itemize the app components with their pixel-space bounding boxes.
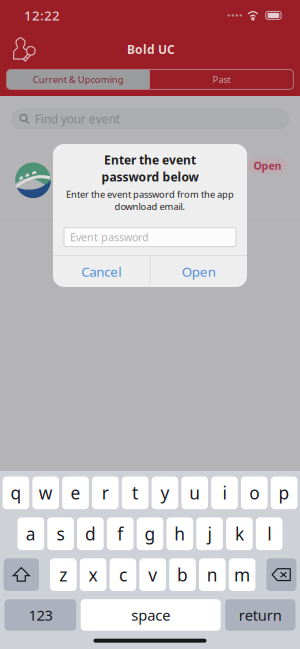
- button[interactable]: Current & Upcoming: [7, 69, 150, 89]
- staticText: Jul 30 – Aug 2, 2019: [62, 177, 170, 193]
- button[interactable]: Past: [150, 69, 293, 89]
- button[interactable]: Account: [0, 37, 42, 62]
- button[interactable]: d: [77, 517, 104, 550]
- button[interactable]: p: [271, 476, 297, 509]
- staticText: 123: [28, 605, 52, 625]
- button[interactable]: n: [199, 558, 226, 591]
- staticText: Cancel: [81, 263, 121, 280]
- button[interactable]: v: [139, 558, 166, 591]
- button[interactable]: m: [229, 558, 255, 591]
- staticText: return: [239, 605, 282, 625]
- staticText: t: [132, 481, 138, 504]
- staticText: s: [57, 522, 65, 545]
- button[interactable]: space: [81, 599, 221, 631]
- staticText: 2019 Bold Conference: [62, 153, 227, 174]
- staticText: Past: [213, 73, 231, 86]
- staticText: w: [39, 481, 53, 504]
- button[interactable]: 2019 Bold Conference: [0, 140, 300, 220]
- button[interactable]: i: [211, 476, 238, 509]
- staticText: j: [208, 522, 212, 545]
- button[interactable]: Shift: [4, 558, 39, 591]
- button[interactable]: s: [47, 517, 74, 550]
- staticText: m: [234, 563, 250, 586]
- staticText: Event password: [70, 230, 149, 244]
- staticText: e: [70, 481, 80, 504]
- button[interactable]: Cancel: [53, 256, 150, 287]
- button[interactable]: u: [181, 476, 208, 509]
- staticText: u: [189, 481, 200, 504]
- staticText: y: [160, 481, 169, 504]
- staticText: h: [174, 522, 185, 545]
- staticText: z: [59, 563, 67, 586]
- button[interactable]: Open: [150, 256, 247, 287]
- button[interactable]: r: [92, 476, 119, 509]
- staticText: Los Angeles, CA: [62, 196, 151, 212]
- button[interactable]: l: [256, 517, 282, 550]
- button[interactable]: o: [241, 476, 268, 509]
- button[interactable]: t: [122, 476, 148, 509]
- staticText: n: [207, 563, 218, 586]
- staticText: r: [102, 481, 109, 504]
- staticText: l: [267, 522, 271, 545]
- staticText: o: [249, 481, 259, 504]
- staticText: Open: [182, 263, 216, 280]
- staticText: Enter the event: [104, 152, 196, 168]
- button[interactable]: e: [62, 476, 89, 509]
- staticText: g: [144, 522, 155, 545]
- staticText: 12:22: [24, 6, 60, 24]
- staticText: d: [85, 522, 96, 545]
- button[interactable]: b: [169, 558, 196, 591]
- button[interactable]: c: [110, 558, 136, 591]
- button[interactable]: y: [152, 476, 178, 509]
- button[interactable]: g: [137, 517, 163, 550]
- staticText: Bold UC: [127, 41, 175, 57]
- button[interactable]: k: [226, 517, 253, 550]
- staticText: q: [10, 481, 21, 504]
- button[interactable]: a: [17, 517, 44, 550]
- button[interactable]: f: [107, 517, 133, 550]
- staticText: p: [279, 481, 290, 504]
- staticText: x: [89, 563, 98, 586]
- staticText: k: [235, 522, 244, 545]
- staticText: b: [177, 563, 188, 586]
- button[interactable]: Event password: [64, 228, 236, 247]
- staticText: download email.: [114, 200, 185, 213]
- staticText: i: [222, 481, 226, 504]
- button[interactable]: 123: [4, 599, 76, 631]
- staticText: space: [131, 605, 170, 625]
- button[interactable]: h: [166, 517, 193, 550]
- staticText: Find your event: [35, 111, 120, 127]
- staticText: a: [26, 522, 36, 545]
- staticText: Enter the event password from the app: [66, 188, 234, 200]
- button[interactable]: return: [225, 599, 295, 631]
- staticText: v: [148, 563, 157, 586]
- staticText: f: [117, 522, 123, 545]
- staticText: password below: [101, 169, 198, 185]
- button[interactable]: z: [50, 558, 77, 591]
- staticText: Open: [253, 158, 281, 173]
- button[interactable]: x: [80, 558, 106, 591]
- staticText: Current & Upcoming: [33, 73, 124, 86]
- staticText: c: [119, 563, 127, 586]
- button[interactable]: w: [32, 476, 59, 509]
- button[interactable]: q: [3, 476, 29, 509]
- button[interactable]: j: [196, 517, 223, 550]
- button[interactable]: Delete: [266, 558, 296, 591]
